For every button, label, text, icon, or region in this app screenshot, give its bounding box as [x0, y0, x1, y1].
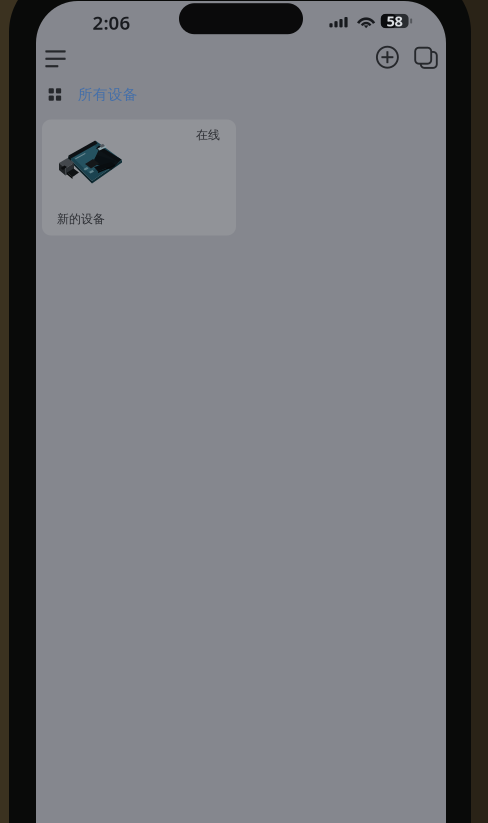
- button[interactable]: Add device: [369, 39, 405, 75]
- staticText: 所有设备: [78, 85, 138, 103]
- staticText: 在线: [196, 128, 220, 142]
- button[interactable]: 在线: [42, 119, 236, 235]
- staticText: 2:06: [92, 10, 130, 35]
- button[interactable]: 所有设备: [49, 82, 149, 106]
- button[interactable]: Menu: [33, 40, 77, 78]
- button[interactable]: Switch layout: [408, 40, 444, 76]
- staticText: 58: [386, 11, 402, 31]
- staticText: 新的设备: [57, 212, 105, 226]
